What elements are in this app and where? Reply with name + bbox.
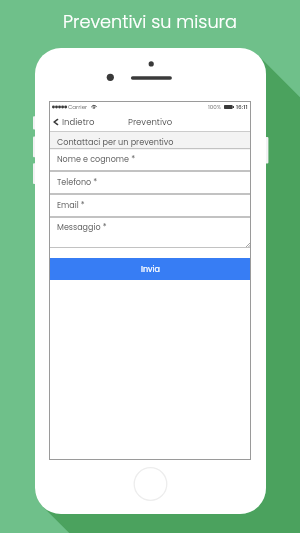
- staticText: Invia: [141, 264, 160, 275]
- button[interactable]: Invia: [49, 258, 251, 280]
- staticText: Nome e cognome *: [57, 154, 136, 165]
- staticText: 16:11: [236, 103, 248, 111]
- staticText: Carrier: [68, 103, 88, 111]
- button[interactable]: Telefono *: [49, 171, 251, 194]
- button[interactable]: Messaggio *: [49, 217, 251, 248]
- staticText: Messaggio *: [57, 222, 107, 233]
- staticText: Preventivo: [128, 116, 173, 128]
- staticText: Telefono *: [57, 177, 98, 188]
- staticText: Email *: [57, 200, 85, 211]
- staticText: Contattaci per un preventivo: [57, 136, 174, 147]
- staticText: 100%: [208, 103, 222, 111]
- button[interactable]: Indietro: [49, 114, 99, 130]
- button[interactable]: Nome e cognome *: [49, 148, 251, 171]
- button[interactable]: Email *: [49, 194, 251, 217]
- other: Indietro: [52, 118, 60, 126]
- staticText: Preventivi su misura: [63, 9, 237, 33]
- staticText: Indietro: [62, 116, 95, 128]
